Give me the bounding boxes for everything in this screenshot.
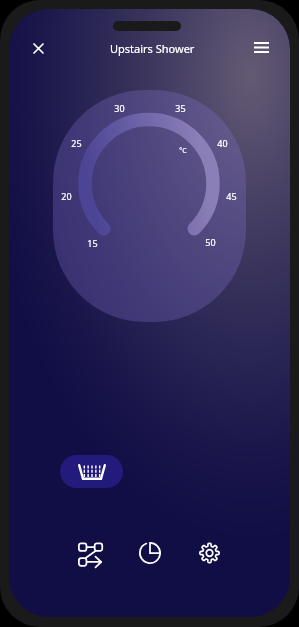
staticText: 45	[226, 190, 237, 202]
staticText: 20	[61, 190, 72, 202]
staticText: 40	[217, 137, 228, 149]
button[interactable]: Menu	[245, 31, 277, 63]
button[interactable]: Wash cycle	[60, 455, 123, 488]
button[interactable]: Close	[22, 32, 54, 64]
button[interactable]: Statistics	[128, 531, 172, 575]
button[interactable]: Automations	[68, 531, 112, 575]
staticText: 25	[71, 137, 82, 149]
button[interactable]: Settings	[187, 531, 231, 575]
staticText: 35	[175, 102, 186, 114]
staticText: °C	[179, 146, 187, 156]
staticText: 50	[205, 236, 216, 248]
staticText: 15	[87, 237, 98, 249]
staticText: Upstairs Shower	[110, 41, 195, 56]
staticText: 30	[114, 102, 125, 114]
